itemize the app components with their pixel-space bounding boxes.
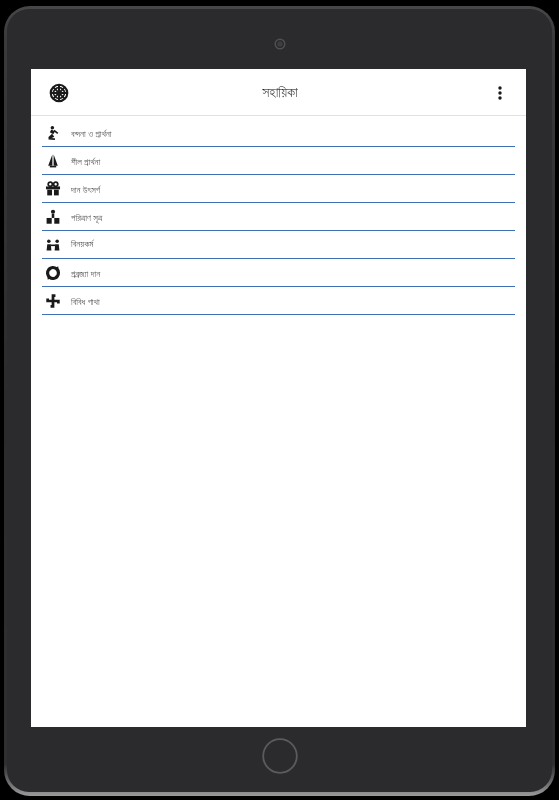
button[interactable]: প্রব্রজ্যা দান xyxy=(31,259,526,287)
button[interactable]: More options xyxy=(480,73,520,113)
staticText: সহায়িকা xyxy=(262,86,298,100)
button[interactable]: Navigation menu xyxy=(39,73,79,113)
staticText: শীল প্রার্থনা xyxy=(71,155,101,167)
button[interactable]: বিনয়কর্ম xyxy=(31,231,526,259)
button[interactable]: বন্দনা ও প্রার্থনা xyxy=(31,119,526,147)
staticText: দান উৎসর্গ xyxy=(71,183,101,195)
staticText: পরিত্রাণ সূত্র xyxy=(71,211,103,223)
staticText: বিনয়কর্ম xyxy=(71,240,94,249)
button[interactable]: বিবিধ গাথা xyxy=(31,287,526,315)
button[interactable]: শীল প্রার্থনা xyxy=(31,147,526,175)
staticText: বিবিধ গাথা xyxy=(71,295,100,307)
staticText: বন্দনা ও প্রার্থনা xyxy=(71,127,112,139)
button[interactable]: পরিত্রাণ সূত্র xyxy=(31,203,526,231)
button[interactable]: দান উৎসর্গ xyxy=(31,175,526,203)
staticText: প্রব্রজ্যা দান xyxy=(71,267,101,279)
